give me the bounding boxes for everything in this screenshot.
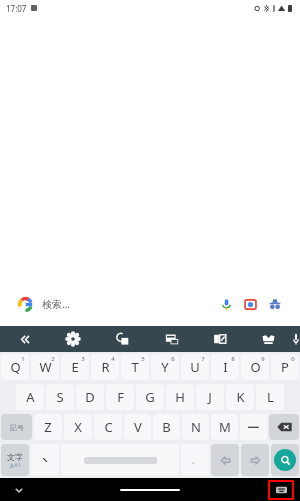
staticText: 2 [51,355,55,363]
button[interactable]: Settings [48,326,98,352]
button[interactable]: Switch keyboard [270,482,292,498]
button[interactable]: O [241,354,269,380]
staticText: R [101,358,110,376]
button[interactable]: E [61,354,89,380]
staticText: O [250,358,261,376]
button[interactable]: Google Lens [238,292,262,316]
button[interactable]: D [76,384,104,410]
staticText: K [236,388,245,406]
button[interactable]: T [121,354,149,380]
staticText: 4 [111,355,115,363]
staticText: Y [161,358,169,376]
staticText: X [74,418,82,436]
staticText: U [190,358,200,376]
button[interactable]: Back [0,326,48,352]
staticText: 3 [81,355,85,363]
staticText: T [131,358,139,376]
button[interactable]: Cursor left [211,444,239,476]
button[interactable]: Clipboard [98,326,148,352]
staticText: Q [10,358,21,376]
button[interactable]: Grave [31,444,59,476]
button[interactable]: Voice search [214,292,238,316]
staticText: 7 [201,355,205,363]
staticText: 検索… [42,297,70,311]
button[interactable]: Backspace [269,414,299,440]
staticText: 6 [171,355,175,363]
staticText: あA1 [9,462,21,469]
staticText: I [223,358,228,376]
button[interactable]: Cursor right [241,444,269,476]
staticText: P [281,358,289,376]
staticText: S [56,388,64,406]
staticText: 17:07 [6,3,27,14]
button[interactable]: H [166,384,194,410]
staticText: 0 [291,355,295,363]
button[interactable]: Keyboard layout [148,326,196,352]
staticText: ー [247,419,260,435]
button[interactable]: 検索… [8,287,292,321]
button[interactable]: U [181,354,209,380]
staticText: V [134,418,142,436]
button[interactable]: X [64,414,92,440]
staticText: A [26,388,35,406]
staticText: 記号 [10,423,24,432]
staticText: W [39,358,52,376]
button[interactable]: K [226,384,254,410]
button[interactable]: Q [1,354,29,380]
button[interactable]: Space [61,444,179,476]
staticText: D [85,388,95,406]
button[interactable]: F [106,384,134,410]
staticText: J [208,388,212,406]
staticText: 。 [192,456,199,465]
button[interactable]: ー [240,414,267,440]
button[interactable]: M [211,414,238,440]
staticText: F [117,388,124,406]
button[interactable]: Stickers [244,326,292,352]
staticText: M [219,418,231,436]
staticText: 9 [261,355,265,363]
button[interactable]: Search [271,444,299,476]
button[interactable]: B [153,414,180,440]
button[interactable]: Edit [196,326,244,352]
staticText: E [71,358,79,376]
button[interactable]: V [124,414,151,440]
staticText: B [162,418,171,436]
button[interactable]: Input mode [1,444,29,476]
staticText: H [175,388,185,406]
button[interactable]: C [94,414,122,440]
staticText: N [191,418,201,436]
button[interactable]: G [136,384,164,410]
button[interactable]: Symbols [1,414,32,440]
staticText: C [104,418,113,436]
button[interactable]: R [91,354,119,380]
button[interactable]: W [31,354,59,380]
staticText: L [267,388,274,406]
button[interactable]: L [256,384,284,410]
staticText: 5 [141,355,145,363]
staticText: 8 [231,355,235,363]
button[interactable]: Incognito [262,291,288,317]
button[interactable]: Z [34,414,62,440]
button[interactable]: A [16,384,44,410]
button[interactable]: Y [151,354,179,380]
button[interactable]: J [196,384,224,410]
button[interactable]: Voice input [292,326,300,352]
button[interactable]: S [46,384,74,410]
button[interactable]: I [211,354,239,380]
staticText: G [145,388,155,406]
staticText: 1 [21,355,25,363]
button[interactable]: N [182,414,209,440]
staticText: 文字 [7,452,23,462]
button[interactable]: Hide keyboard [10,481,28,499]
button[interactable]: P [271,354,299,380]
staticText: Z [44,418,52,436]
